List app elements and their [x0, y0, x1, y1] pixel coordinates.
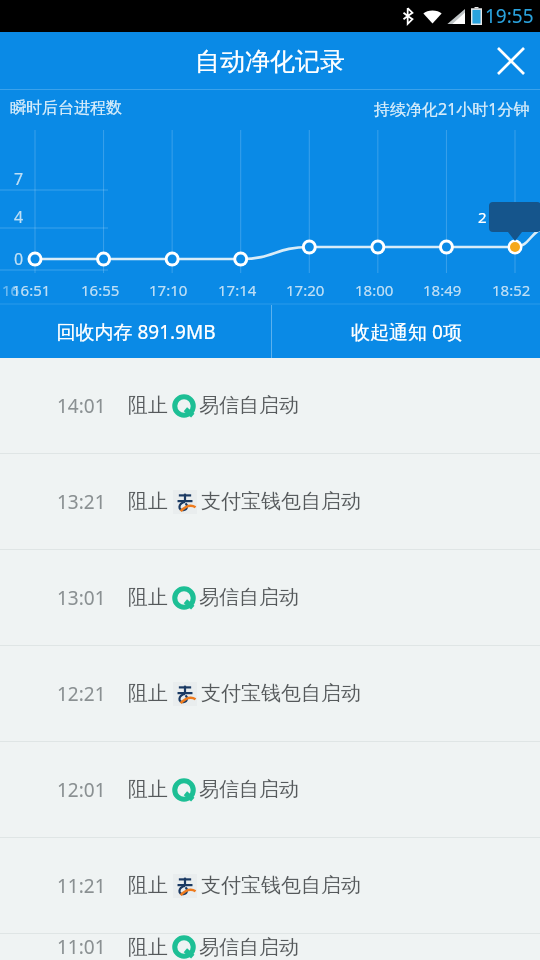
staticText: 阻止: [128, 681, 168, 706]
button[interactable]: 13:21: [0, 454, 540, 549]
staticText: 持续净化21小时1分钟: [374, 98, 530, 120]
staticText: 16: [2, 280, 20, 300]
button[interactable]: 收起通知 0项: [272, 305, 540, 358]
button[interactable]: 11:21: [0, 838, 540, 933]
staticText: 13:01: [57, 585, 106, 611]
staticText: 阻止: [128, 873, 168, 898]
button[interactable]: 回收内存 891.9MB: [0, 305, 271, 358]
staticText: 2: [478, 207, 487, 227]
button[interactable]: Close: [482, 32, 540, 90]
staticText: 阻止: [128, 393, 168, 418]
staticText: 瞬时后台进程数: [10, 98, 122, 118]
staticText: 7: [14, 168, 24, 190]
button[interactable]: 12:01: [0, 742, 540, 837]
button[interactable]: 14:01: [0, 358, 540, 453]
staticText: 支付宝钱包自启动: [201, 489, 361, 514]
staticText: 自动净化记录: [195, 46, 345, 77]
staticText: 回收内存 891.9MB: [56, 319, 216, 345]
staticText: 0: [14, 248, 24, 270]
staticText: 17:14: [218, 280, 257, 300]
button[interactable]: 12:21: [0, 646, 540, 741]
staticText: 易信自启动: [199, 585, 299, 610]
staticText: 易信自启动: [199, 935, 299, 960]
staticText: 14:01: [57, 393, 106, 419]
staticText: 支付宝钱包自启动: [201, 681, 361, 706]
staticText: 13:21: [57, 489, 106, 515]
staticText: 阻止: [128, 489, 168, 514]
staticText: 18:49: [423, 280, 462, 300]
staticText: 18:52: [492, 280, 531, 300]
staticText: 19:55: [485, 3, 534, 29]
staticText: 12:21: [57, 681, 106, 707]
staticText: 16:55: [81, 280, 120, 300]
button[interactable]: 11:01: [0, 934, 540, 960]
staticText: 易信自启动: [199, 777, 299, 802]
staticText: 17:10: [149, 280, 188, 300]
staticText: 17:20: [286, 280, 325, 300]
staticText: 4: [14, 206, 24, 228]
staticText: 11:01: [57, 934, 106, 960]
staticText: 阻止: [128, 935, 168, 960]
staticText: 12:01: [57, 777, 106, 803]
staticText: 18:00: [355, 280, 394, 300]
staticText: 阻止: [128, 585, 168, 610]
staticText: 收起通知 0项: [351, 319, 462, 345]
staticText: 阻止: [128, 777, 168, 802]
staticText: 支付宝钱包自启动: [201, 873, 361, 898]
staticText: 11:21: [57, 873, 106, 899]
button[interactable]: 13:01: [0, 550, 540, 645]
staticText: 易信自启动: [199, 393, 299, 418]
staticText: 16:51: [12, 280, 51, 300]
